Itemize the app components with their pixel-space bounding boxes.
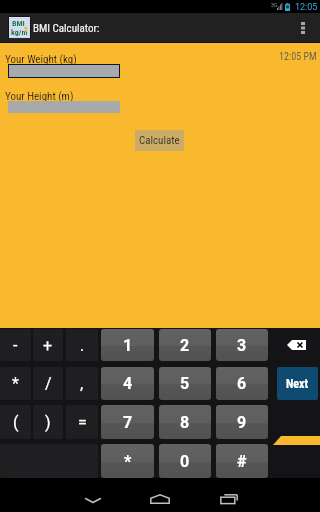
staticText: /: [45, 374, 52, 393]
staticText: #: [237, 452, 247, 471]
staticText: +: [43, 336, 53, 355]
staticText: 0: [180, 452, 190, 471]
button[interactable]: 6: [216, 367, 268, 400]
button[interactable]: *: [101, 444, 154, 478]
button[interactable]: More options: [289, 13, 320, 43]
staticText: ,: [80, 374, 84, 393]
button[interactable]: 4: [101, 367, 154, 400]
button[interactable]: Recent apps: [206, 478, 252, 512]
staticText: Your Weight (kg): [5, 53, 77, 66]
button[interactable]: Calculate: [135, 130, 184, 151]
staticText: 1: [123, 336, 133, 355]
staticText: 4: [123, 374, 133, 393]
staticText: .: [80, 336, 85, 355]
button[interactable]: 3: [216, 329, 268, 361]
staticText: Next: [286, 377, 309, 391]
button[interactable]: Weight input: [8, 64, 120, 78]
staticText: 3: [237, 336, 247, 355]
staticText: 5: [180, 374, 190, 393]
button[interactable]: /: [33, 367, 63, 400]
button[interactable]: 9: [216, 405, 268, 439]
button[interactable]: =: [66, 405, 98, 439]
staticText: 12:05: [295, 2, 318, 13]
staticText: kg/m: [11, 28, 28, 37]
staticText: =: [78, 413, 87, 432]
button[interactable]: +: [33, 329, 63, 361]
staticText: 8: [180, 413, 190, 432]
staticText: 12:05 PM: [279, 51, 317, 63]
button[interactable]: -: [0, 329, 31, 361]
button[interactable]: 7: [101, 405, 154, 439]
button[interactable]: 5: [159, 367, 211, 400]
button[interactable]: Next: [277, 367, 318, 400]
button[interactable]: ,: [66, 367, 98, 400]
staticText: (: [13, 413, 19, 432]
button[interactable]: ): [33, 405, 63, 439]
staticText: BMI Calculator:: [33, 22, 100, 35]
staticText: -: [13, 336, 18, 355]
staticText: *: [124, 452, 132, 471]
staticText: ): [45, 413, 51, 432]
button[interactable]: Backspace: [272, 329, 320, 361]
staticText: BMI: [12, 19, 25, 28]
staticText: 7: [123, 413, 133, 432]
button[interactable]: 2: [159, 329, 211, 361]
button[interactable]: #: [216, 444, 268, 478]
staticText: Calculate: [139, 134, 180, 147]
button[interactable]: 1: [101, 329, 154, 361]
staticText: 2: [180, 336, 190, 355]
staticText: 2: [24, 26, 28, 34]
button[interactable]: Home: [137, 478, 183, 512]
button[interactable]: 8: [159, 405, 211, 439]
staticText: *: [12, 374, 19, 393]
button[interactable]: 0: [159, 444, 211, 478]
button[interactable]: *: [0, 367, 31, 400]
staticText: 3G: [271, 1, 278, 8]
staticText: 6: [237, 374, 247, 393]
staticText: 9: [237, 413, 247, 432]
staticText: Your Height (m): [5, 90, 74, 103]
button[interactable]: Back: [70, 478, 116, 512]
button[interactable]: (: [0, 405, 31, 439]
button[interactable]: .: [66, 329, 98, 361]
